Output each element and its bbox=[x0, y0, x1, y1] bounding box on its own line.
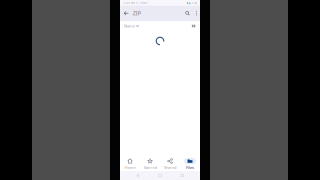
staticText: ▮ ▲ ᯤ ▰ bbox=[187, 1, 197, 4]
staticText: Files bbox=[186, 165, 194, 170]
button[interactable]: Search bbox=[182, 6, 193, 20]
staticText: Starred bbox=[143, 165, 156, 170]
button[interactable]: Home bbox=[120, 157, 140, 171]
button[interactable]: Files bbox=[180, 157, 200, 171]
button[interactable]: Back bbox=[133, 172, 142, 178]
staticText: Name bbox=[124, 23, 135, 29]
staticText: Home bbox=[124, 165, 135, 170]
button[interactable]: More options bbox=[193, 6, 200, 20]
staticText: 3:44 am 0.1KB/s bbox=[123, 1, 147, 4]
button[interactable]: Switch view bbox=[191, 21, 197, 30]
button[interactable]: Back bbox=[122, 6, 131, 20]
button[interactable]: Starred bbox=[140, 157, 160, 171]
button[interactable]: Shared bbox=[160, 157, 180, 171]
button[interactable]: Recents bbox=[178, 172, 187, 178]
staticText: ZIP bbox=[133, 10, 141, 17]
button[interactable]: Home bbox=[155, 172, 164, 178]
staticText: Shared bbox=[164, 165, 176, 170]
button[interactable]: Name bbox=[123, 22, 139, 30]
